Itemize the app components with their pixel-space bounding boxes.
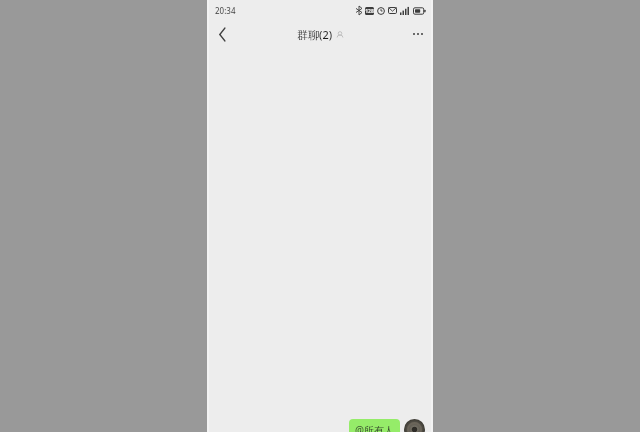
staticText: 128 [365, 8, 374, 15]
button[interactable]: More options [405, 21, 431, 47]
staticText: 群聊(2) [297, 27, 333, 42]
staticText: @所有人 [355, 423, 394, 432]
button[interactable]: Back [209, 21, 235, 47]
button[interactable]: Sender avatar [404, 419, 425, 432]
staticText: 20:34 [215, 5, 236, 16]
button[interactable]: @所有人 [349, 419, 400, 432]
